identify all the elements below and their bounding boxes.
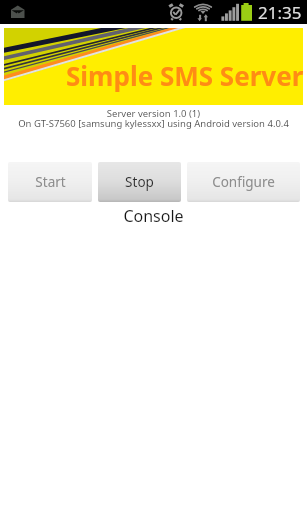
staticText: Stop <box>125 173 154 191</box>
staticText: Start <box>35 173 66 191</box>
staticText: Configure <box>212 173 275 191</box>
staticText: Console <box>0 205 307 227</box>
button[interactable]: Start <box>8 162 92 202</box>
button[interactable]: Configure <box>187 162 300 202</box>
button[interactable]: Stop <box>98 162 181 202</box>
staticText: Simple SMS Server <box>66 58 303 93</box>
staticText: Server version 1.0 (1) <box>0 107 307 120</box>
staticText: 21:35 <box>258 1 302 24</box>
staticText: On GT-S7560 [samsung kylessxx] using And… <box>0 117 307 130</box>
